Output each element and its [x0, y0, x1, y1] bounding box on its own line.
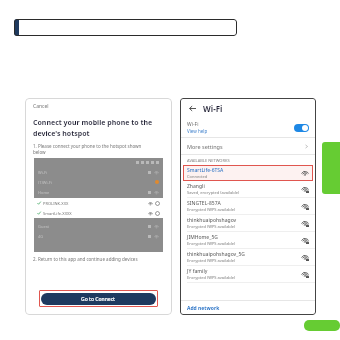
- button[interactable]: JIMHome_5G: [180, 232, 316, 248]
- staticText: thinkhuaipohshagov: [187, 217, 237, 224]
- staticText: Encrypted (WPS available): [187, 258, 236, 263]
- button[interactable]: JY family: [180, 266, 316, 282]
- staticText: Home: [38, 190, 50, 195]
- button[interactable]: thinkhuaipohshagov_5G: [180, 249, 316, 265]
- button[interactable]: Zhangli: [180, 181, 316, 197]
- staticText: Encrypted (WPS available): [187, 207, 236, 212]
- staticText: Zhangli: [187, 183, 205, 190]
- staticText: device's hotspot: [33, 129, 90, 139]
- button[interactable]: More settings: [180, 138, 316, 154]
- staticText: Cancel: [33, 103, 49, 110]
- staticText: SINGTEL-857A: [187, 200, 221, 207]
- button[interactable]: Go to Connect: [41, 293, 156, 305]
- staticText: Guest: [38, 224, 49, 229]
- staticText: SmartLife-6TSA: [187, 167, 224, 174]
- button[interactable]: Wi-Fi: [180, 118, 316, 137]
- button[interactable]: SINGTEL-857A: [180, 198, 316, 214]
- staticText: Wi-Fi: [38, 170, 48, 175]
- staticText: Encrypted (WPS available): [187, 224, 236, 229]
- staticText: below: [33, 149, 46, 155]
- staticText: JY family: [187, 268, 208, 275]
- staticText: 1. Please connect your phone to the hots…: [33, 143, 142, 149]
- button[interactable]: Back: [187, 103, 197, 113]
- staticText: Connected: [187, 174, 208, 179]
- staticText: Wi-Fi: [203, 103, 223, 114]
- staticText: JIMHome_5G: [187, 234, 218, 241]
- button[interactable]: Action: [304, 320, 340, 331]
- staticText: thinkhuaipohshagov_5G: [187, 251, 245, 258]
- button[interactable]: thinkhuaipohshagov: [180, 215, 316, 231]
- staticText: AVAILABLE NETWORKS: [187, 158, 230, 163]
- staticText: 2. Return to this app and continue addin…: [33, 256, 138, 262]
- staticText: SmartLife-XXXX: [43, 211, 72, 216]
- button[interactable]: Cancel: [25, 98, 172, 114]
- button[interactable]: Scroll indicator: [322, 142, 340, 194]
- button[interactable]: SmartLife-6TSA: [183, 165, 313, 181]
- button[interactable]: [14, 19, 237, 36]
- staticText: More settings: [187, 143, 223, 150]
- staticText: 4G: [38, 234, 44, 239]
- staticText: PROLINK-XXX: [43, 201, 69, 206]
- button[interactable]: Add network: [180, 301, 316, 315]
- staticText: Add network: [187, 305, 220, 312]
- staticText: Encrypted (WPS available): [187, 275, 236, 280]
- staticText: Encrypted (WPS available): [187, 241, 236, 246]
- staticText: View help: [187, 128, 208, 134]
- staticText: (1)Wi-Fi: [38, 180, 52, 185]
- staticText: Saved, encrypted (available): [187, 190, 240, 195]
- staticText: Connect your mobile phone to the: [33, 118, 153, 128]
- staticText: Go to Connect: [81, 296, 116, 303]
- staticText: Wi-Fi: [187, 121, 199, 128]
